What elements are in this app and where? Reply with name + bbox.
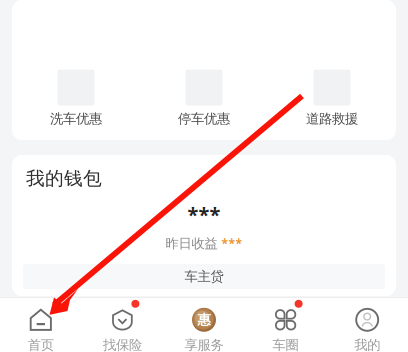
staticText: 我的 [354, 337, 380, 352]
button[interactable]: 道路救援 [268, 70, 396, 127]
button[interactable]: 停车优惠 [140, 70, 268, 127]
staticText: 昨日收益 [165, 235, 217, 252]
staticText: 停车优惠 [178, 111, 230, 127]
staticText: 找保险 [103, 337, 142, 352]
button[interactable]: 惠 [163, 297, 245, 352]
button[interactable]: 首页 [0, 297, 82, 352]
staticText: 车圈 [273, 337, 299, 352]
staticText: 我的钱包 [26, 167, 102, 190]
button[interactable]: 车圈 [245, 297, 326, 352]
staticText: 首页 [28, 337, 54, 352]
button[interactable]: 我的 [326, 297, 408, 352]
staticText: 享服务 [184, 337, 223, 352]
button[interactable]: 车主贷 [23, 264, 385, 289]
staticText: 惠 [197, 312, 210, 328]
staticText: *** [221, 236, 242, 252]
staticText: *** [187, 201, 220, 227]
staticText: 道路救援 [306, 111, 358, 127]
staticText: 车主贷 [184, 268, 223, 285]
staticText: 洗车优惠 [50, 111, 102, 127]
button[interactable]: 洗车优惠 [12, 70, 140, 127]
button[interactable]: 找保险 [82, 297, 163, 352]
